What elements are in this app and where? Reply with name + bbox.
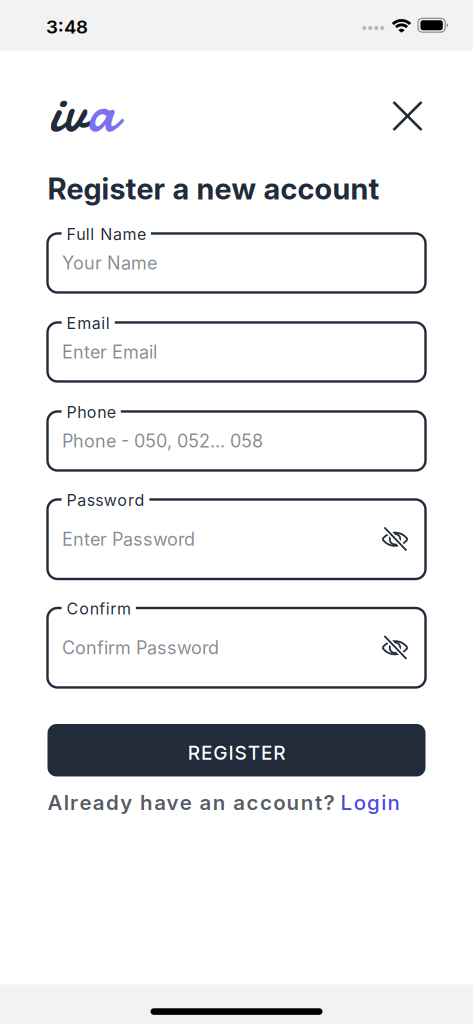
staticText: Register a new account [47,171,379,206]
staticText: Phone - 050, 052... 058 [62,430,263,452]
staticText: Already have an account? [47,790,334,815]
button[interactable]: Show password [381,527,409,551]
staticText: E [261,741,272,764]
staticText: T [248,741,260,764]
staticText: Confirm [67,599,131,618]
button[interactable]: Password [47,499,425,579]
staticText: Full Name [67,224,146,244]
staticText: Login [340,790,400,815]
button[interactable]: Email [47,322,425,381]
staticText: Your Name [62,252,157,274]
button[interactable]: Phone [47,411,425,470]
staticText: I [228,741,233,764]
staticText: a [87,69,116,153]
button[interactable]: R [47,724,425,776]
staticText: Confirm Password [62,637,219,659]
staticText: R [273,741,285,764]
staticText: iv [49,69,87,153]
button[interactable]: Show password [381,636,409,660]
staticText: Phone [67,402,116,422]
button[interactable]: Login [340,790,400,815]
button[interactable]: Full Name [47,233,425,292]
staticText: Enter Password [62,528,195,550]
button[interactable]: Confirm [47,608,425,687]
staticText: R [188,741,200,764]
staticText: Email [67,313,110,333]
staticText: Password [67,490,144,510]
staticText: 3:48 [46,15,88,38]
staticText: S [235,741,247,764]
button[interactable]: Close [392,101,422,131]
staticText: E [201,741,212,764]
staticText: G [213,741,227,764]
staticText: Enter Email [62,341,157,363]
